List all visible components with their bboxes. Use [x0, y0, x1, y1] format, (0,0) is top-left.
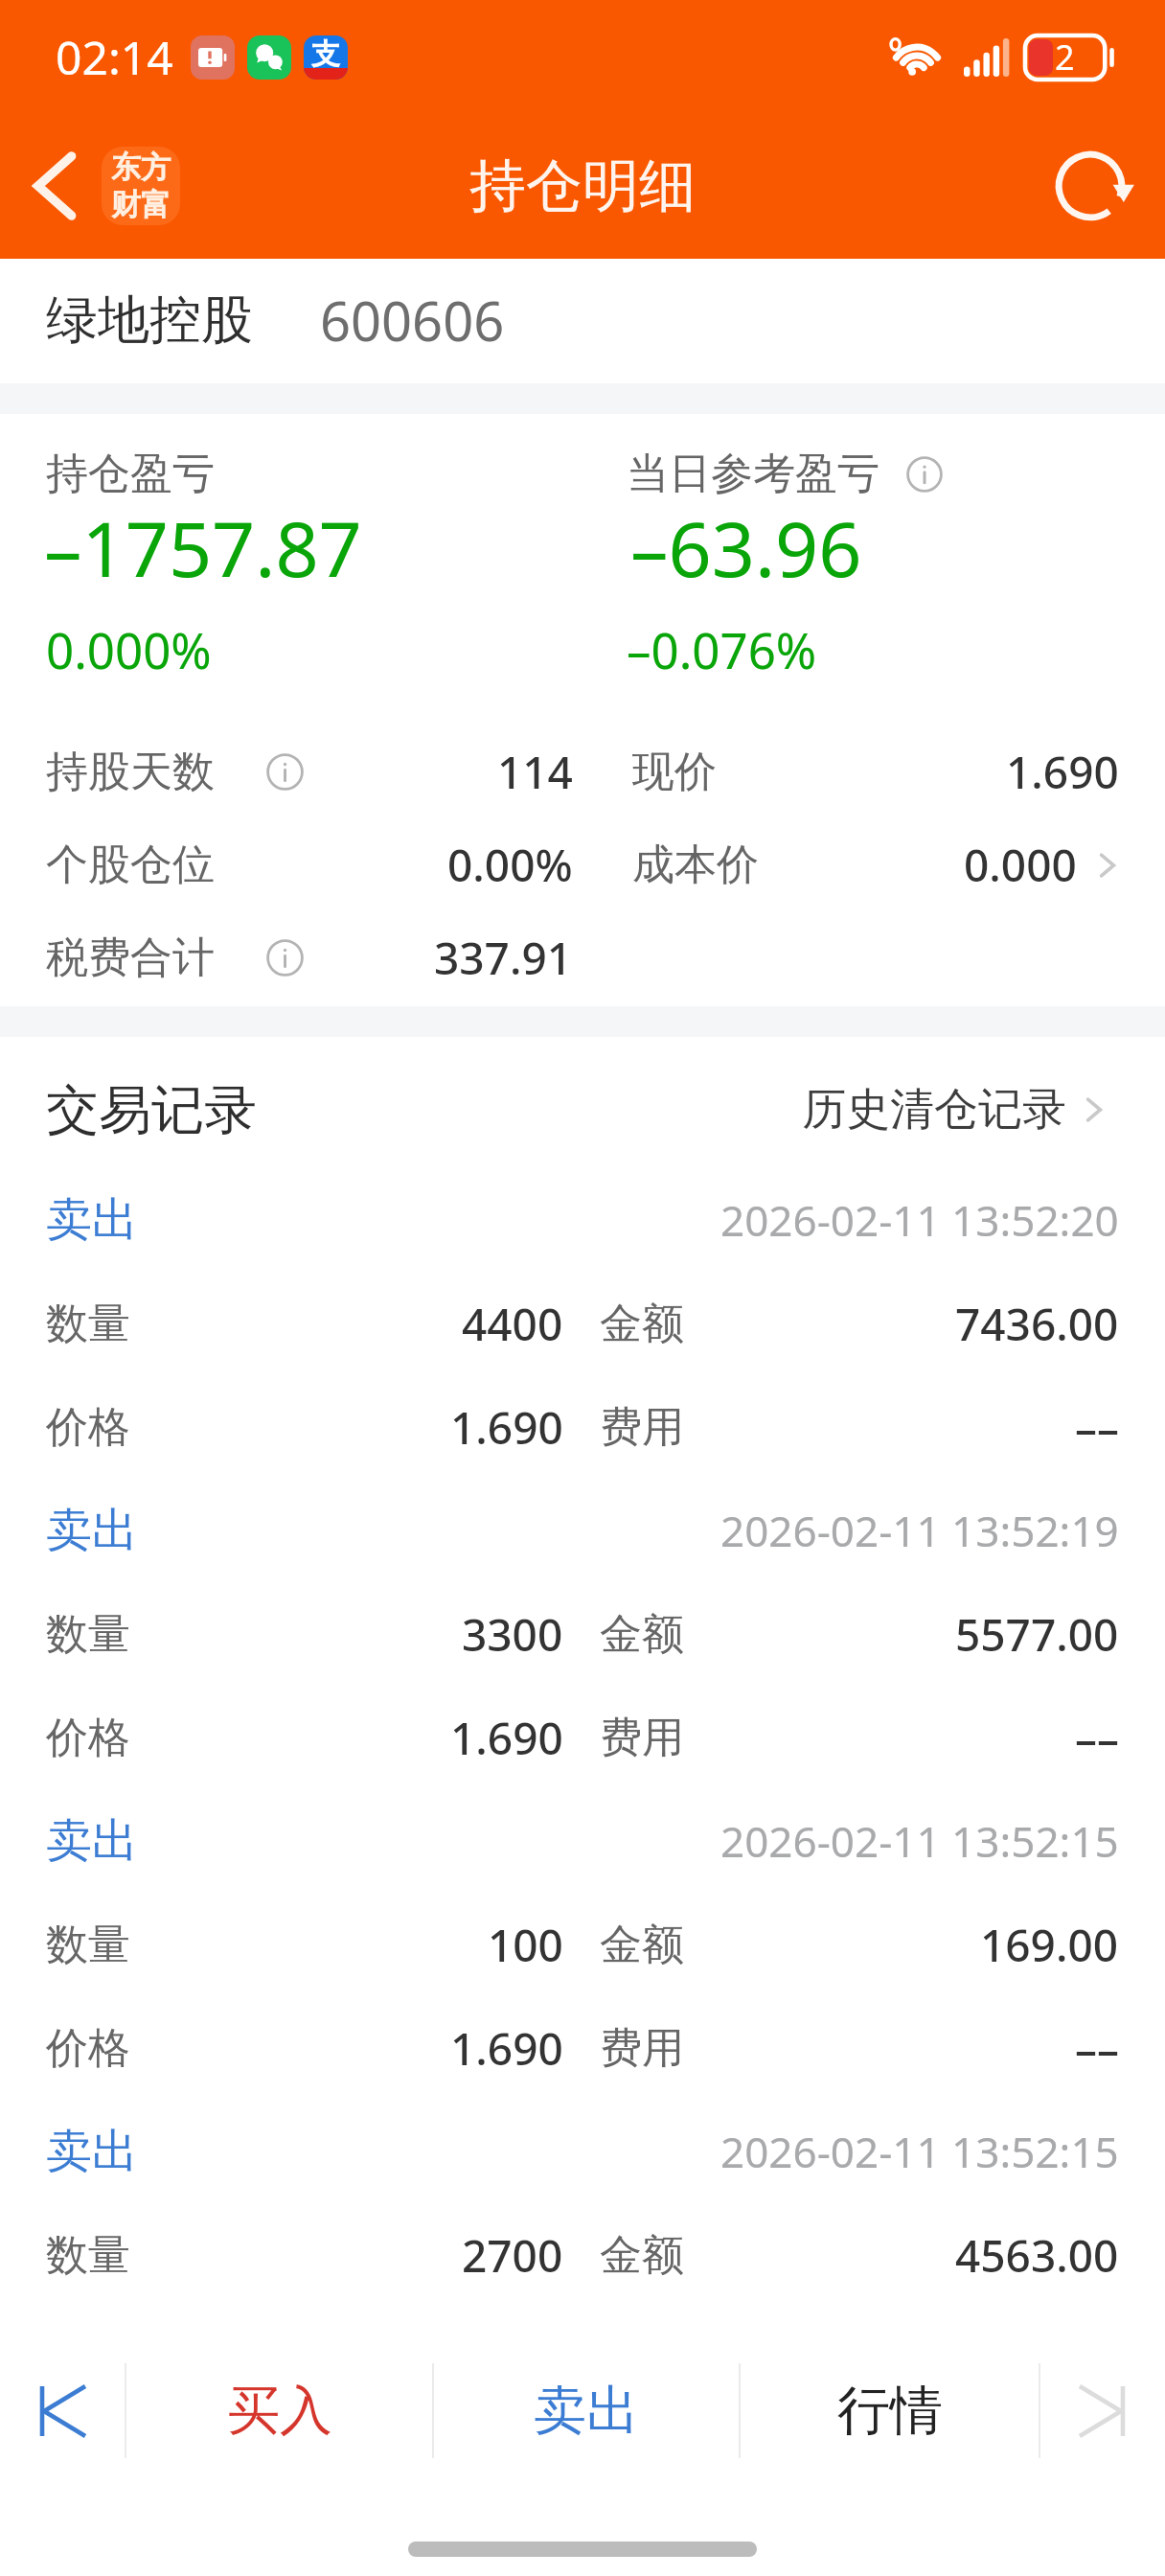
staticText: 600606 — [320, 284, 505, 356]
staticText: 0.000% — [46, 616, 212, 682]
staticText: 5577.00 — [955, 1604, 1119, 1665]
staticText: 费用 — [600, 1401, 684, 1454]
staticText: 价格 — [46, 1401, 130, 1454]
staticText: 2026-02-11 13:52:19 — [720, 1502, 1119, 1559]
button[interactable]: 历史清仓记录 — [802, 1082, 1109, 1138]
staticText: 持股天数 — [46, 746, 215, 798]
staticText: 绿地控股 — [46, 287, 253, 353]
staticText: 持仓盈亏 — [46, 448, 215, 500]
button[interactable]: 行情 — [741, 2363, 1039, 2458]
staticText: 169.00 — [980, 1915, 1119, 1975]
staticText: 个股仓位 — [46, 839, 215, 891]
staticText: 1.690 — [450, 2018, 563, 2079]
staticText: 费用 — [600, 2022, 684, 2075]
staticText: 数量 — [46, 1298, 130, 1350]
staticText: 2700 — [462, 2225, 563, 2286]
staticText: 4400 — [462, 1294, 563, 1354]
staticText: 费用 — [600, 1712, 684, 1764]
staticText: 当日参考盈亏 — [627, 448, 879, 500]
staticText: 02:14 — [56, 26, 173, 88]
staticText: 4563.00 — [955, 2225, 1119, 2286]
staticText: 卖出 — [534, 2378, 639, 2444]
staticText: –– — [1075, 2018, 1119, 2079]
staticText: 数量 — [46, 1608, 130, 1661]
staticText: 金额 — [600, 1919, 684, 1971]
staticText: 金额 — [600, 1608, 684, 1661]
staticText: 337.91 — [434, 928, 573, 988]
staticText: 税费合计 — [46, 931, 215, 984]
staticText: 卖出 — [46, 1812, 138, 1870]
staticText: 1.690 — [450, 1397, 563, 1458]
staticText: 数量 — [46, 2229, 130, 2282]
staticText: –– — [1075, 1708, 1119, 1768]
staticText: 2026-02-11 13:52:15 — [720, 1812, 1119, 1870]
button[interactable]: 卖出 — [0, 1789, 1165, 1893]
staticText: 价格 — [46, 1712, 130, 1764]
button[interactable]: 买入 — [126, 2363, 432, 2458]
button[interactable]: Back — [0, 113, 201, 259]
staticText: 2026-02-11 13:52:15 — [720, 2123, 1119, 2180]
staticText: 2026-02-11 13:52:20 — [720, 1191, 1119, 1249]
button[interactable]: 绿地控股 — [0, 258, 1165, 382]
staticText: 现价 — [632, 746, 717, 798]
staticText: 3300 — [462, 1604, 563, 1665]
button[interactable]: Refresh — [1025, 113, 1165, 259]
staticText: –0.076% — [627, 616, 817, 682]
staticText: 东方 — [111, 149, 171, 186]
button[interactable]: 卖出 — [434, 2363, 739, 2458]
button[interactable]: Previous page — [0, 2363, 125, 2458]
staticText: 持仓明细 — [469, 150, 696, 221]
button[interactable]: 卖出 — [0, 1168, 1165, 1272]
staticText: 交易记录 — [46, 1077, 257, 1143]
button[interactable]: 卖出 — [0, 1479, 1165, 1582]
staticText: 卖出 — [46, 1191, 138, 1249]
staticText: –– — [1075, 1397, 1119, 1458]
staticText: 114 — [497, 742, 573, 802]
staticText: 100 — [488, 1915, 563, 1975]
staticText: 买入 — [227, 2378, 332, 2444]
staticText: 1.690 — [1006, 742, 1119, 802]
staticText: 行情 — [837, 2378, 943, 2444]
staticText: 支 — [311, 36, 340, 73]
staticText: 价格 — [46, 2022, 130, 2075]
staticText: 财富 — [111, 186, 171, 223]
staticText: –1757.87 — [44, 496, 362, 600]
staticText: 2 — [1055, 34, 1075, 80]
staticText: 金额 — [600, 2229, 684, 2282]
staticText: 0.00% — [447, 835, 573, 895]
staticText: 1.690 — [450, 1708, 563, 1768]
staticText: 卖出 — [46, 1502, 138, 1559]
button[interactable]: 卖出 — [0, 2100, 1165, 2203]
button[interactable]: Next page — [1040, 2363, 1165, 2458]
staticText: 金额 — [600, 1298, 684, 1350]
staticText: 数量 — [46, 1919, 130, 1971]
staticText: 卖出 — [46, 2123, 138, 2180]
staticText: –63.96 — [630, 496, 862, 600]
staticText: 历史清仓记录 — [802, 1082, 1066, 1138]
staticText: 成本价 — [632, 839, 759, 891]
staticText: 0.000 — [964, 835, 1077, 895]
staticText: 7436.00 — [955, 1294, 1119, 1354]
